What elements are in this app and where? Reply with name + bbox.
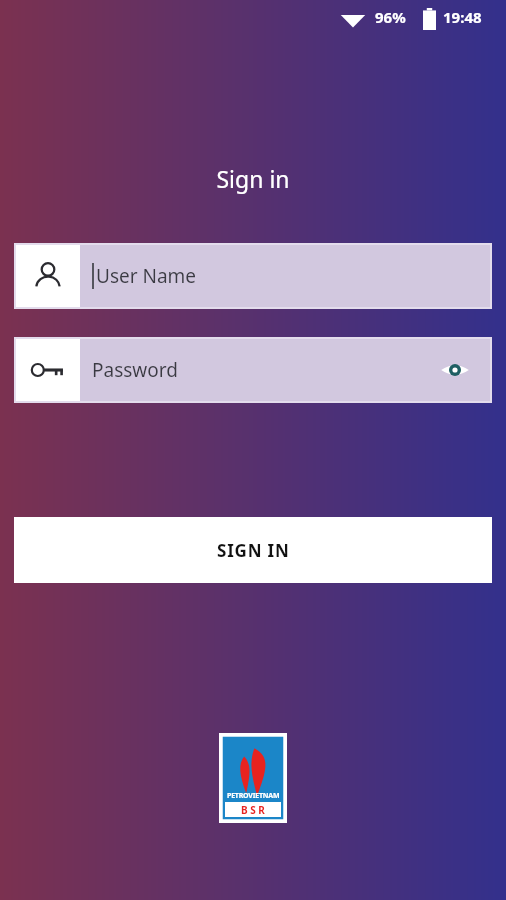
button[interactable]: User Name — [16, 245, 490, 307]
staticText: 19:48 — [443, 7, 482, 27]
staticText: User Name — [96, 263, 197, 289]
staticText: 96% — [375, 7, 406, 27]
staticText: Password — [92, 357, 178, 383]
button[interactable]: Password — [16, 339, 490, 401]
staticText: PETROVIETNAM — [227, 791, 280, 801]
staticText: Sign in — [0, 163, 506, 194]
staticText: B S R — [241, 803, 265, 817]
staticText: SIGN IN — [217, 539, 290, 562]
other: Show password — [440, 360, 470, 380]
button[interactable]: SIGN IN — [14, 517, 492, 583]
